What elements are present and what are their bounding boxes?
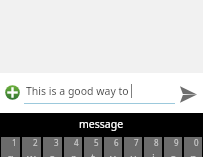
staticText: This is a good way to bbox=[26, 84, 129, 98]
staticText: 5 bbox=[94, 137, 99, 148]
button[interactable]: 1 bbox=[1, 137, 20, 157]
button[interactable]: 6 bbox=[104, 137, 122, 157]
button[interactable]: message bbox=[0, 113, 203, 134]
staticText: p bbox=[190, 150, 197, 157]
button[interactable]: Send bbox=[180, 86, 197, 103]
button[interactable]: Add attachment bbox=[4, 84, 21, 101]
staticText: y bbox=[110, 150, 116, 157]
staticText: 9 bbox=[174, 137, 179, 148]
staticText: 0 bbox=[194, 137, 199, 148]
button[interactable]: 8 bbox=[144, 137, 162, 157]
staticText: 8 bbox=[154, 137, 159, 148]
staticText: message bbox=[79, 117, 124, 131]
staticText: i bbox=[152, 150, 155, 157]
staticText: 2 bbox=[33, 137, 38, 148]
staticText: r bbox=[71, 150, 76, 157]
staticText: q bbox=[7, 150, 14, 157]
button[interactable]: 9 bbox=[164, 137, 182, 157]
staticText: 6 bbox=[114, 137, 119, 148]
staticText: 1 bbox=[12, 137, 17, 148]
staticText: u bbox=[130, 150, 137, 157]
staticText: w bbox=[27, 150, 36, 157]
button[interactable]: 2 bbox=[22, 137, 41, 157]
staticText: 3 bbox=[54, 137, 59, 148]
staticText: e bbox=[49, 150, 56, 157]
button[interactable]: 4 bbox=[64, 137, 82, 157]
staticText: o bbox=[170, 150, 177, 157]
staticText: 7 bbox=[134, 137, 139, 148]
button[interactable]: 0 bbox=[184, 137, 202, 157]
button[interactable]: 7 bbox=[124, 137, 142, 157]
staticText: t bbox=[91, 150, 95, 157]
staticText: 4 bbox=[74, 137, 79, 148]
button[interactable]: 5 bbox=[84, 137, 102, 157]
button[interactable]: 3 bbox=[43, 137, 62, 157]
